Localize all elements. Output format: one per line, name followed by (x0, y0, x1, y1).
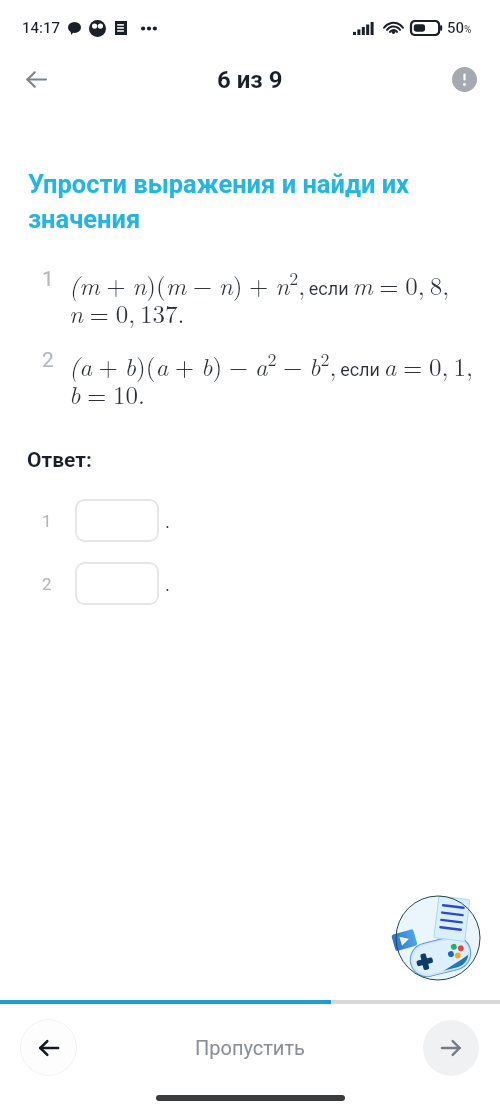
staticText: (a + b)(a + b) − a2 − b2, если a = 0, 1,… (69, 346, 473, 412)
staticText: Упрости выражения и найди их значения (28, 169, 460, 235)
button[interactable] (75, 499, 159, 542)
staticText: 1 (42, 267, 69, 292)
button[interactable]: Предыдущий (20, 1019, 77, 1076)
staticText: 14:17 (22, 19, 61, 37)
staticText: . (165, 510, 171, 532)
button[interactable]: Назад (12, 55, 60, 103)
button[interactable]: Пропустить (183, 1028, 317, 1067)
staticText: 1 (42, 511, 75, 531)
button[interactable]: Информация (444, 59, 484, 99)
staticText: 2 (42, 348, 69, 373)
staticText: . (165, 573, 171, 595)
staticText: Ответ: (27, 448, 92, 473)
button[interactable]: Следующий (423, 1020, 479, 1076)
staticText: 6 из 9 (217, 66, 283, 94)
staticText: 50% (447, 19, 472, 37)
staticText: 2 (42, 574, 75, 594)
button[interactable] (75, 562, 159, 605)
staticText: (m + n)(m − n) + n2, если m = 0, 8, n = … (69, 265, 450, 331)
